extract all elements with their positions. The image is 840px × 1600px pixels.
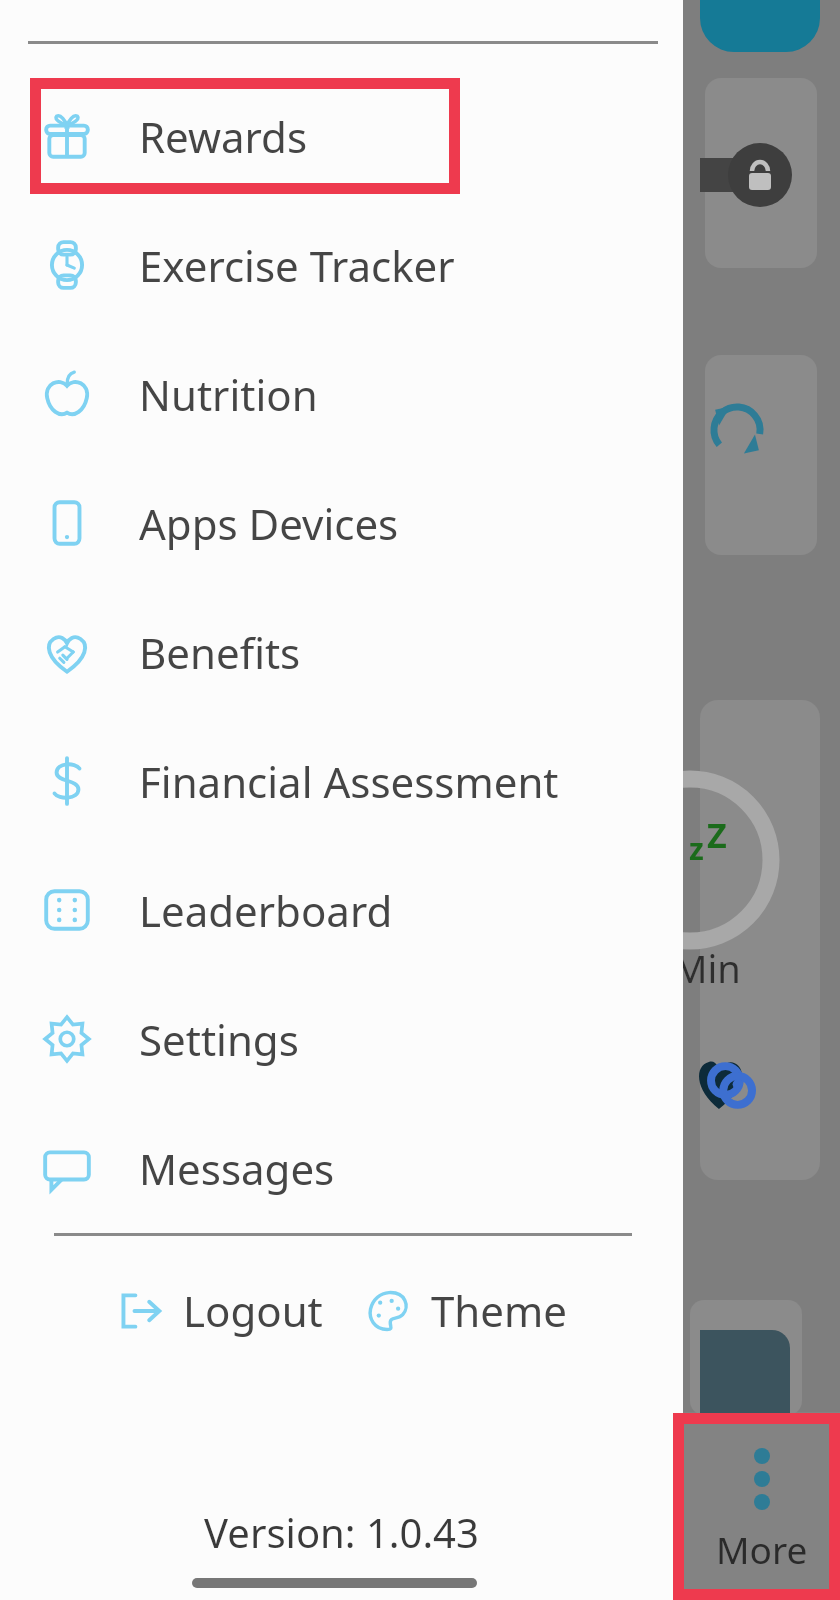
staticText: Apps Devices — [139, 495, 399, 552]
button[interactable]: Leaderboard — [41, 852, 661, 968]
staticText: Nutrition — [139, 366, 318, 423]
staticText: Messages — [139, 1140, 335, 1197]
staticText: Financial Assessment — [139, 753, 559, 810]
staticText: Leaderboard — [139, 882, 393, 939]
staticText: Exercise Tracker — [139, 237, 455, 294]
button[interactable]: Financial Assessment — [41, 723, 661, 839]
button[interactable]: Apps Devices — [41, 465, 661, 581]
staticText: Benefits — [139, 624, 301, 681]
button[interactable]: Rewards — [41, 78, 661, 194]
button[interactable]: More — [683, 1412, 840, 1600]
staticText: Version: 1.0.43 — [0, 1505, 683, 1559]
button[interactable]: Logout — [117, 1282, 323, 1339]
staticText: More — [716, 1524, 808, 1574]
button[interactable]: Theme — [365, 1282, 567, 1339]
staticText: Settings — [139, 1011, 299, 1068]
staticText: Rewards — [139, 108, 308, 165]
button[interactable]: Benefits — [41, 594, 661, 710]
button[interactable]: Settings — [41, 981, 661, 1097]
staticText: Logout — [183, 1282, 323, 1339]
button[interactable]: Exercise Tracker — [41, 207, 661, 323]
button[interactable]: Nutrition — [41, 336, 661, 452]
button[interactable]: Messages — [41, 1110, 661, 1226]
staticText: z — [689, 828, 704, 869]
staticText: Z — [707, 812, 727, 858]
staticText: Theme — [431, 1282, 567, 1339]
staticText: Min — [673, 942, 741, 994]
